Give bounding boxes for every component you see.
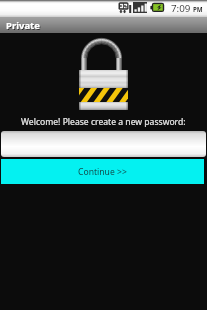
staticText: Welcome! Please create a new password: bbox=[21, 116, 186, 128]
button[interactable]: Continue >> bbox=[1, 159, 204, 184]
button[interactable]: Password entry field bbox=[1, 131, 206, 157]
staticText: PM bbox=[193, 5, 203, 13]
staticText: 7:09 bbox=[171, 2, 191, 15]
staticText: Private bbox=[6, 19, 40, 32]
staticText: Private bbox=[7, 20, 41, 33]
staticText: Continue >> bbox=[78, 166, 127, 178]
